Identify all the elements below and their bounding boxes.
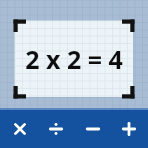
button[interactable]: Subtract: [76, 110, 109, 148]
button[interactable]: Add: [112, 110, 145, 148]
button[interactable]: 2 x 2 = 4: [15, 21, 133, 97]
staticText: 2 x 2 = 4: [15, 42, 133, 76]
button[interactable]: Divide: [39, 110, 72, 148]
button[interactable]: Multiply: [3, 110, 36, 148]
